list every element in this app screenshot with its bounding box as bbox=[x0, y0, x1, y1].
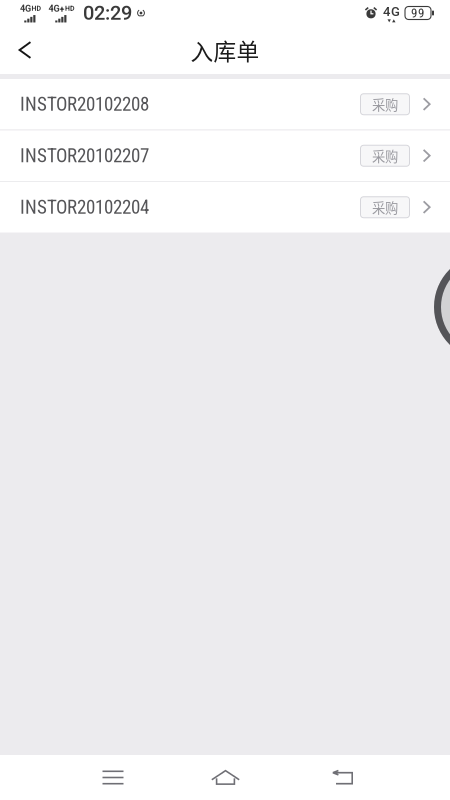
staticText: 4G bbox=[383, 4, 400, 19]
staticText: 4G bbox=[20, 3, 31, 14]
staticText: 02:29 bbox=[83, 1, 132, 25]
staticText: 采购 bbox=[372, 198, 398, 217]
staticText: 入库单 bbox=[190, 34, 259, 66]
staticText: 采购 bbox=[372, 146, 398, 165]
staticText: 99 bbox=[411, 5, 425, 21]
button[interactable]: Back bbox=[0, 26, 50, 74]
button[interactable]: Back bbox=[305, 755, 380, 800]
staticText: INSTOR20102204 bbox=[20, 196, 149, 218]
staticText: HD bbox=[65, 5, 74, 12]
staticText: INSTOR20102207 bbox=[20, 145, 149, 167]
button[interactable]: Home bbox=[188, 755, 263, 800]
staticText: HD bbox=[31, 5, 40, 12]
staticText: 4G+ bbox=[48, 3, 64, 14]
button[interactable]: INSTOR20102207 bbox=[0, 130, 450, 181]
button[interactable]: Recent apps bbox=[75, 755, 150, 800]
button[interactable]: INSTOR20102204 bbox=[0, 182, 450, 232]
button[interactable]: INSTOR20102208 bbox=[0, 79, 450, 129]
staticText: 采购 bbox=[372, 95, 398, 114]
staticText: INSTOR20102208 bbox=[20, 93, 149, 115]
